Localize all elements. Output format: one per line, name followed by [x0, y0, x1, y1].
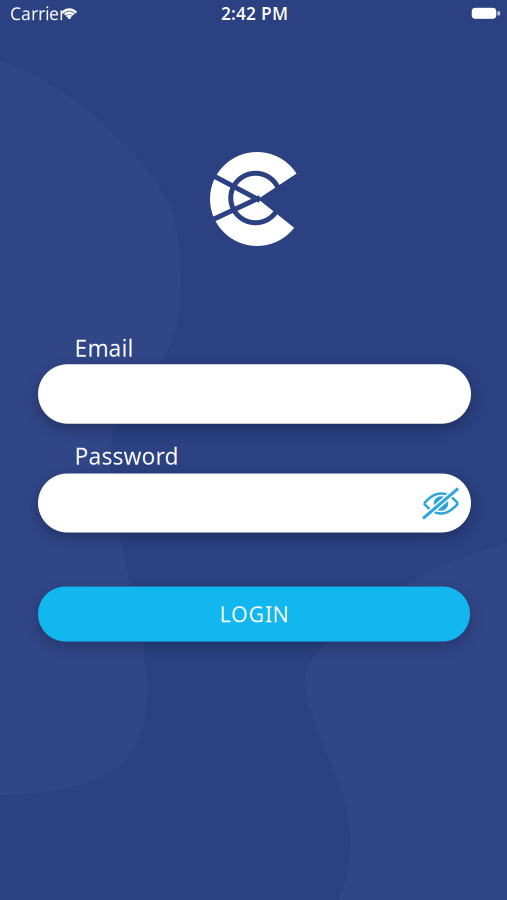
- staticText: Carrier: [10, 2, 66, 25]
- button[interactable]: Email: [38, 364, 471, 424]
- staticText: Email: [74, 333, 133, 363]
- button[interactable]: LOGIN: [38, 586, 470, 641]
- staticText: Password: [74, 441, 178, 471]
- button[interactable]: Show password: [419, 482, 463, 524]
- staticText: LOGIN: [219, 600, 288, 628]
- button[interactable]: Password: [38, 473, 471, 532]
- staticText: 2:42 PM: [221, 2, 288, 25]
